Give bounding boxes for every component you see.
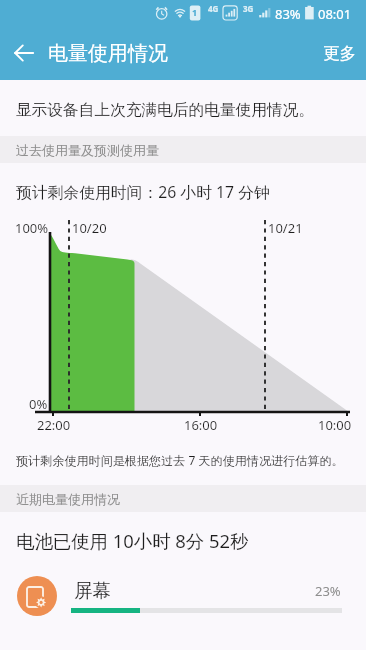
- staticText: 22:00: [37, 416, 71, 434]
- staticText: 0%: [29, 395, 48, 413]
- staticText: 1: [192, 6, 198, 18]
- staticText: 10/20: [72, 219, 107, 237]
- staticText: 预计剩余使用时间：26 小时 17 分钟: [16, 181, 270, 203]
- button[interactable]: Back: [0, 26, 48, 80]
- staticText: 3G: [243, 3, 254, 14]
- staticText: 近期电量使用情况: [16, 491, 120, 507]
- staticText: 83%: [275, 5, 301, 23]
- staticText: 过去使用量及预测使用量: [16, 142, 159, 158]
- staticText: 23%: [315, 582, 341, 600]
- staticText: 10/21: [268, 219, 303, 237]
- staticText: 显示设备自上次充满电后的电量使用情况。: [16, 100, 315, 120]
- staticText: 更多: [323, 43, 356, 64]
- staticText: 100%: [15, 219, 49, 237]
- staticText: 电池已使用 10小时 8分 52秒: [16, 528, 249, 553]
- staticText: 4G: [208, 3, 219, 14]
- staticText: 10:00: [318, 416, 352, 434]
- button[interactable]: 更多: [323, 26, 356, 80]
- staticText: 08:01: [318, 5, 352, 23]
- staticText: 电量使用情况: [48, 41, 168, 66]
- staticText: 16:00: [184, 416, 218, 434]
- button[interactable]: 屏幕: [0, 562, 366, 632]
- staticText: 预计剩余使用时间是根据您过去 7 天的使用情况进行估算的。: [16, 452, 344, 469]
- staticText: 屏幕: [74, 579, 111, 602]
